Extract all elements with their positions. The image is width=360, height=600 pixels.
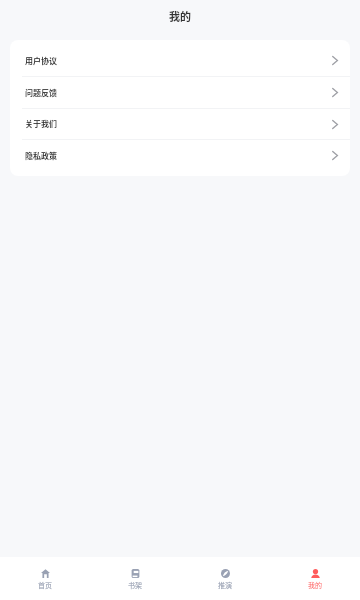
button[interactable]: 隐私政策 [10, 140, 350, 171]
button[interactable]: Home [0, 557, 90, 600]
staticText: 用户协议 [25, 55, 332, 67]
staticText: 隐私政策 [25, 150, 332, 162]
staticText: 我的 [308, 580, 322, 590]
staticText: 推演 [218, 580, 232, 590]
button[interactable]: 关于我们 [10, 109, 350, 139]
button[interactable]: Bookshelf [90, 557, 180, 600]
button[interactable]: 用户协议 [10, 45, 350, 76]
staticText: 我的 [169, 8, 191, 24]
staticText: 书架 [128, 580, 142, 590]
staticText: 关于我们 [25, 118, 332, 130]
button[interactable]: Profile [270, 557, 360, 600]
staticText: 首页 [38, 580, 52, 590]
staticText: 问题反馈 [25, 87, 332, 99]
button[interactable]: Deduction [180, 557, 270, 600]
button[interactable]: 问题反馈 [10, 77, 350, 108]
